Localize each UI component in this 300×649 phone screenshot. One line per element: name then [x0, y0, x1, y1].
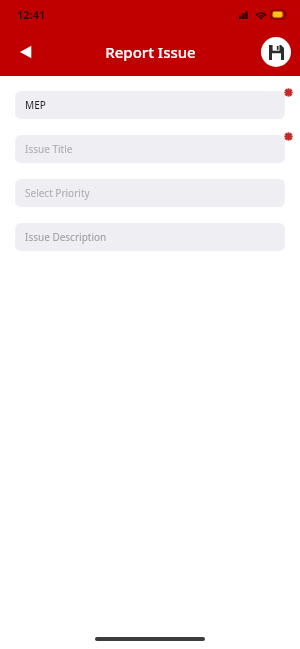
staticText: MEP [25, 98, 46, 112]
staticText: Issue Description [25, 230, 107, 244]
staticText: Issue Title [25, 142, 73, 156]
button[interactable]: Issue Description [15, 223, 285, 251]
button[interactable]: Issue Title [15, 135, 285, 163]
button[interactable]: Back [10, 36, 42, 68]
staticText: Select Priority [25, 186, 90, 200]
button[interactable]: Select Priority [15, 179, 285, 207]
staticText: Report Issue [105, 42, 196, 62]
staticText: 12:41 [17, 7, 46, 22]
button[interactable]: MEP [15, 91, 285, 119]
button[interactable]: Save [261, 37, 291, 67]
